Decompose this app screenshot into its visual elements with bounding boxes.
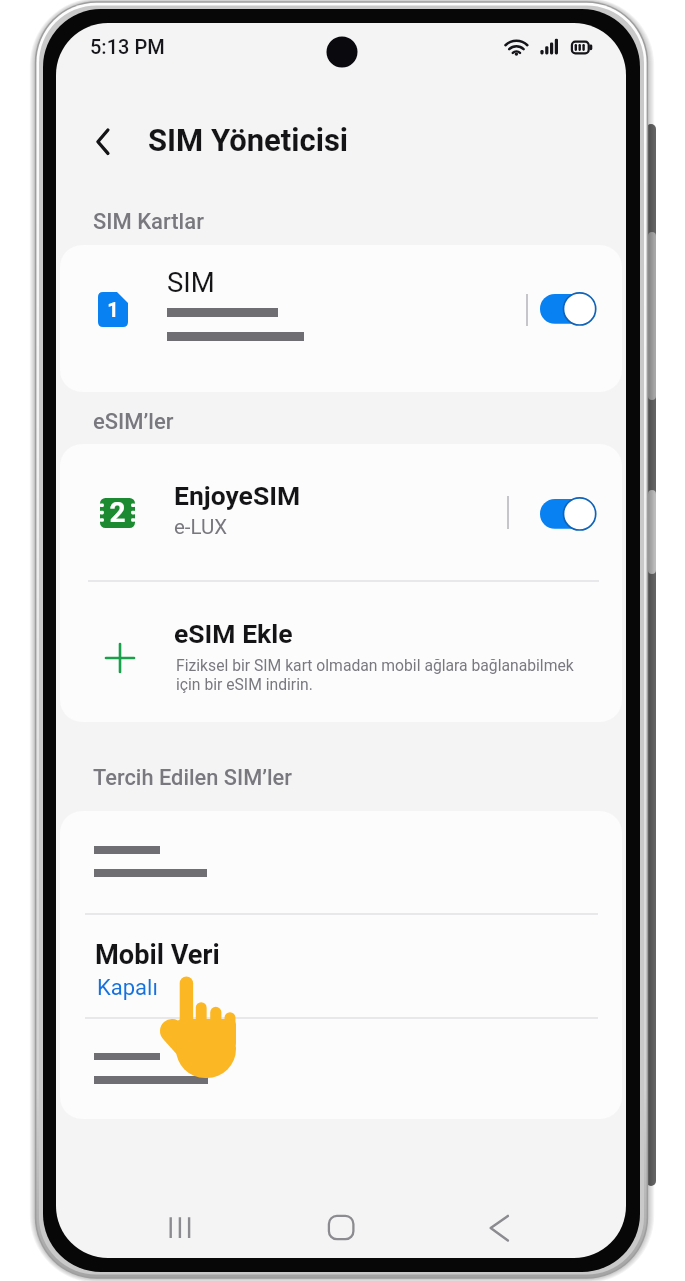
staticText: eSIM’ler (93, 409, 174, 435)
button[interactable]: Back (76, 113, 130, 169)
button[interactable]: SIM 1 (60, 245, 622, 392)
button[interactable]: Home (314, 1203, 368, 1253)
button[interactable]: Mobil Veri (60, 915, 622, 1017)
staticText: için bir eSIM indirin. (176, 675, 313, 693)
staticText: SIM Yöneticisi (148, 122, 349, 158)
staticText: 2 (100, 496, 135, 526)
button[interactable]: EnjoyeSIM e-LUX (60, 444, 622, 581)
staticText: e-LUX (174, 515, 228, 539)
staticText: SIM Kartlar (93, 209, 204, 235)
button[interactable]: Mesaj için tercih edilen SIM (60, 1018, 622, 1119)
button[interactable]: Back (472, 1203, 526, 1253)
button[interactable]: Arama için tercih edilen SIM (60, 811, 622, 913)
staticText: 1 (98, 298, 128, 321)
staticText: Kapalı (97, 975, 158, 1001)
button[interactable]: Toggle SIM (540, 499, 596, 529)
staticText: SIM (167, 266, 215, 298)
staticText: Mobil Veri (95, 939, 220, 971)
staticText: eSIM Ekle (174, 618, 293, 649)
staticText: Tercih Edilen SIM’ler (93, 765, 292, 791)
button[interactable]: eSIM Ekle (60, 582, 622, 722)
staticText: Fiziksel bir SIM kart olmadan mobil ağla… (176, 656, 574, 674)
staticText: EnjoyeSIM (174, 480, 301, 511)
staticText: 5:13 PM (90, 35, 165, 58)
button[interactable]: Toggle SIM (540, 294, 596, 324)
button[interactable]: Recent apps (156, 1203, 210, 1253)
